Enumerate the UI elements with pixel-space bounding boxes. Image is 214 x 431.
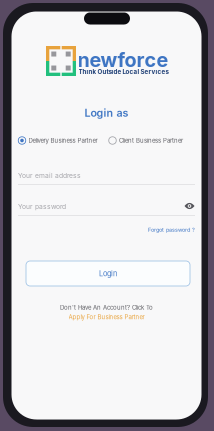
- button[interactable]: Forgot password ?: [18, 226, 195, 233]
- staticText: Apply For Business Partner: [68, 313, 144, 321]
- button[interactable]: Login: [26, 261, 190, 286]
- button[interactable]: Client Business Partner: [108, 136, 183, 144]
- staticText: Login: [99, 269, 117, 278]
- staticText: Think Outside Local Services: [78, 68, 168, 75]
- button[interactable]: Delivery Business Partner: [18, 136, 97, 144]
- staticText: Your password: [18, 202, 66, 211]
- staticText: Your email address: [18, 171, 81, 180]
- button[interactable]: Show password: [184, 202, 194, 210]
- staticText: Delivery Business Partner: [28, 137, 97, 144]
- staticText: Client Business Partner: [119, 137, 183, 144]
- button[interactable]: Apply For Business Partner: [11, 313, 201, 321]
- staticText: Login as: [84, 106, 128, 119]
- staticText: newforce: [77, 48, 168, 72]
- staticText: Forgot password ?: [148, 226, 195, 233]
- staticText: Don't Have An Account? Click To: [60, 304, 153, 311]
